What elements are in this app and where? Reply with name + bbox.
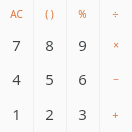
button[interactable]: Multiply <box>99 28 132 62</box>
staticText: × <box>113 38 119 52</box>
staticText: % <box>78 7 87 21</box>
staticText: ÷ <box>112 7 119 22</box>
staticText: 5 <box>45 69 54 89</box>
staticText: ( ) <box>45 7 54 21</box>
staticText: 3 <box>78 104 87 124</box>
button[interactable]: All clear <box>0 0 33 28</box>
button[interactable]: Six <box>66 62 99 96</box>
button[interactable]: Two <box>33 96 66 132</box>
staticText: 8 <box>45 35 54 55</box>
button[interactable]: Nine <box>66 28 99 62</box>
button[interactable]: Percent <box>66 0 99 28</box>
button[interactable]: Four <box>0 62 33 96</box>
button[interactable]: Parentheses <box>33 0 66 28</box>
staticText: 6 <box>78 69 87 89</box>
button[interactable]: Add <box>99 96 132 132</box>
staticText: 1 <box>12 104 21 124</box>
button[interactable]: Seven <box>0 28 33 62</box>
button[interactable]: Eight <box>33 28 66 62</box>
button[interactable]: Subtract <box>99 62 132 96</box>
button[interactable]: One <box>0 96 33 132</box>
button[interactable]: Three <box>66 96 99 132</box>
button[interactable]: Five <box>33 62 66 96</box>
staticText: 7 <box>12 35 21 55</box>
staticText: − <box>113 72 119 86</box>
staticText: + <box>112 107 119 122</box>
staticText: 9 <box>78 35 87 55</box>
button[interactable]: Divide <box>99 0 132 28</box>
staticText: AC <box>10 7 23 21</box>
staticText: 2 <box>45 104 54 124</box>
staticText: 4 <box>12 69 21 89</box>
